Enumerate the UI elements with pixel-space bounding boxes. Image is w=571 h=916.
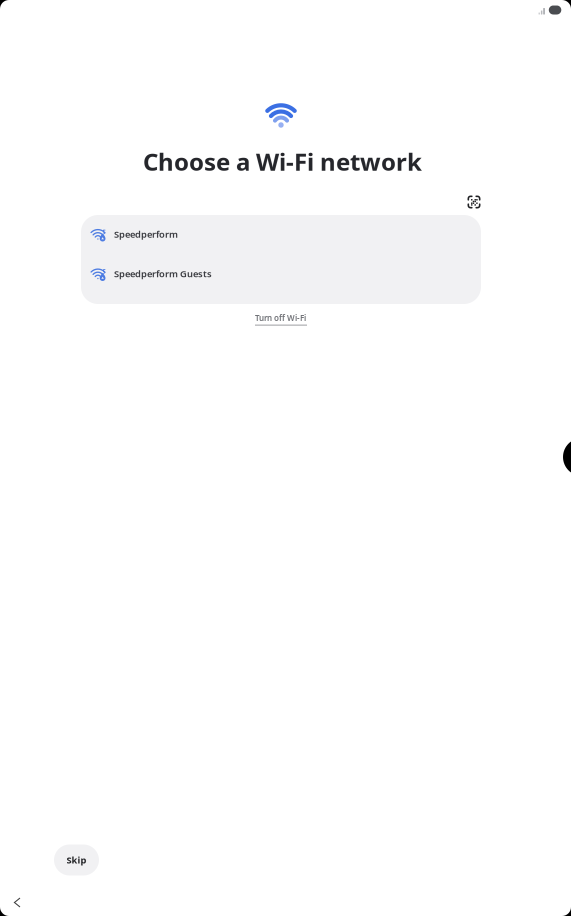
button[interactable]: Turn off Wi-Fi	[245, 302, 317, 335]
button[interactable]: Scan QR code	[462, 191, 486, 213]
button[interactable]: Back	[8, 891, 34, 913]
staticText: Choose a Wi-Fi network	[143, 146, 422, 177]
staticText: Speedperform Guests	[114, 267, 212, 280]
staticText: Skip	[66, 854, 86, 866]
button[interactable]: Speedperform	[81, 220, 481, 259]
staticText: Speedperform	[114, 228, 178, 240]
button[interactable]: Skip	[54, 844, 99, 875]
button[interactable]: Speedperform Guests	[81, 259, 481, 299]
staticText: Turn off Wi-Fi	[255, 312, 306, 323]
